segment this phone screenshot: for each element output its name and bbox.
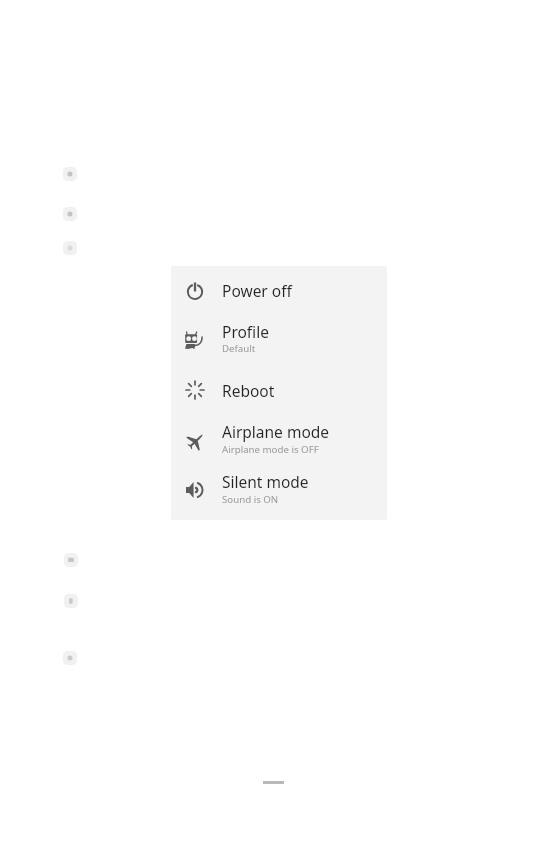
staticText: Default xyxy=(222,342,256,355)
other: Airplane mode xyxy=(187,432,205,450)
other: Reboot xyxy=(186,381,204,399)
other: Power off xyxy=(186,282,204,300)
staticText: Sound is ON xyxy=(222,493,279,506)
staticText: Airplane mode is OFF xyxy=(222,443,319,456)
button[interactable]: Silent mode xyxy=(171,466,387,516)
staticText: Power off xyxy=(222,280,292,301)
staticText: Reboot xyxy=(222,380,275,401)
button[interactable]: Profile xyxy=(171,316,387,366)
staticText: Profile xyxy=(222,321,269,342)
button[interactable]: Reboot xyxy=(171,366,387,416)
staticText: Silent mode xyxy=(222,471,309,492)
other: Silent mode xyxy=(186,481,204,499)
button[interactable]: Airplane mode xyxy=(171,416,387,466)
other: Profile xyxy=(185,331,203,349)
button[interactable]: Power off xyxy=(171,266,387,316)
staticText: Airplane mode xyxy=(222,421,330,442)
